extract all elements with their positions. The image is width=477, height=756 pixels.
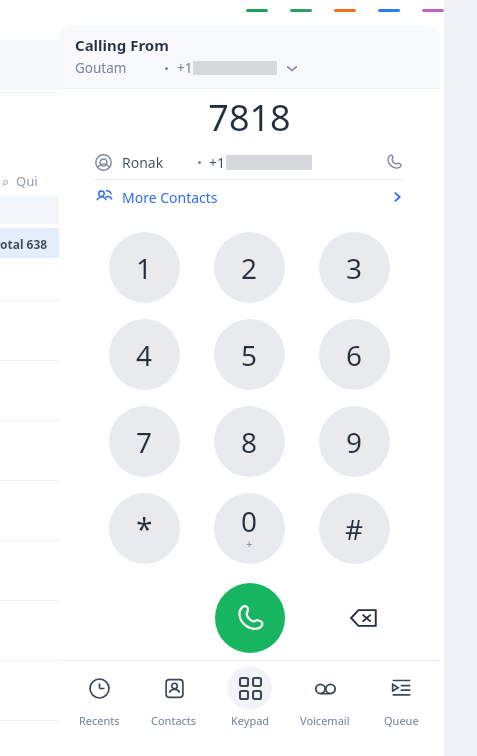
staticText: More Contacts [122,188,218,207]
button[interactable]: 8 [214,406,285,477]
button[interactable]: Backspace [342,596,386,640]
staticText: Recents [79,713,120,728]
staticText: 2 [241,249,258,287]
staticText: * [136,508,153,549]
button[interactable]: 3 [319,232,390,303]
button[interactable]: Keypad [214,666,286,728]
button[interactable]: Queue [365,666,437,728]
staticText: otal 638 [0,236,48,252]
staticText: Calling From [75,35,169,55]
staticText: 0 [241,502,258,540]
button[interactable]: 5 [214,319,285,390]
button[interactable]: More Contacts [59,180,440,214]
staticText: Ronak [122,153,164,172]
button[interactable]: # [319,493,390,564]
staticText: Keypad [231,713,270,728]
button[interactable]: * [109,493,180,564]
button[interactable]: 0 [214,493,285,564]
staticText: 4 [136,336,153,374]
button[interactable]: Calling From [59,26,440,88]
staticText: +1 [177,59,193,77]
button[interactable]: Voicemail [289,666,361,728]
staticText: Voicemail [300,713,350,728]
staticText: 7818 [208,93,291,142]
button[interactable]: 6 [319,319,390,390]
button[interactable]: Call Ronak [384,152,404,172]
button[interactable]: Ronak [59,145,440,179]
button[interactable]: 9 [319,406,390,477]
button[interactable]: 7 [109,406,180,477]
staticText: 5 [241,336,258,374]
staticText: 9 [346,423,363,461]
staticText: # [345,510,364,548]
staticText: ⌕ Qui [2,172,38,190]
staticText: Goutam [75,59,127,77]
staticText: 1 [136,249,153,287]
staticText: Contacts [151,713,197,728]
button[interactable]: Contacts [138,666,210,728]
button[interactable]: 1 [109,232,180,303]
staticText: + [246,536,253,551]
button[interactable]: Recents [63,666,135,728]
staticText: Queue [384,713,419,728]
staticText: 3 [346,249,363,287]
staticText: +1 [209,153,226,172]
button[interactable]: Call [215,583,285,653]
staticText: 8 [241,423,258,461]
staticText: 6 [346,336,363,374]
button[interactable]: 2 [214,232,285,303]
staticText: 7 [136,423,153,461]
button[interactable]: 4 [109,319,180,390]
